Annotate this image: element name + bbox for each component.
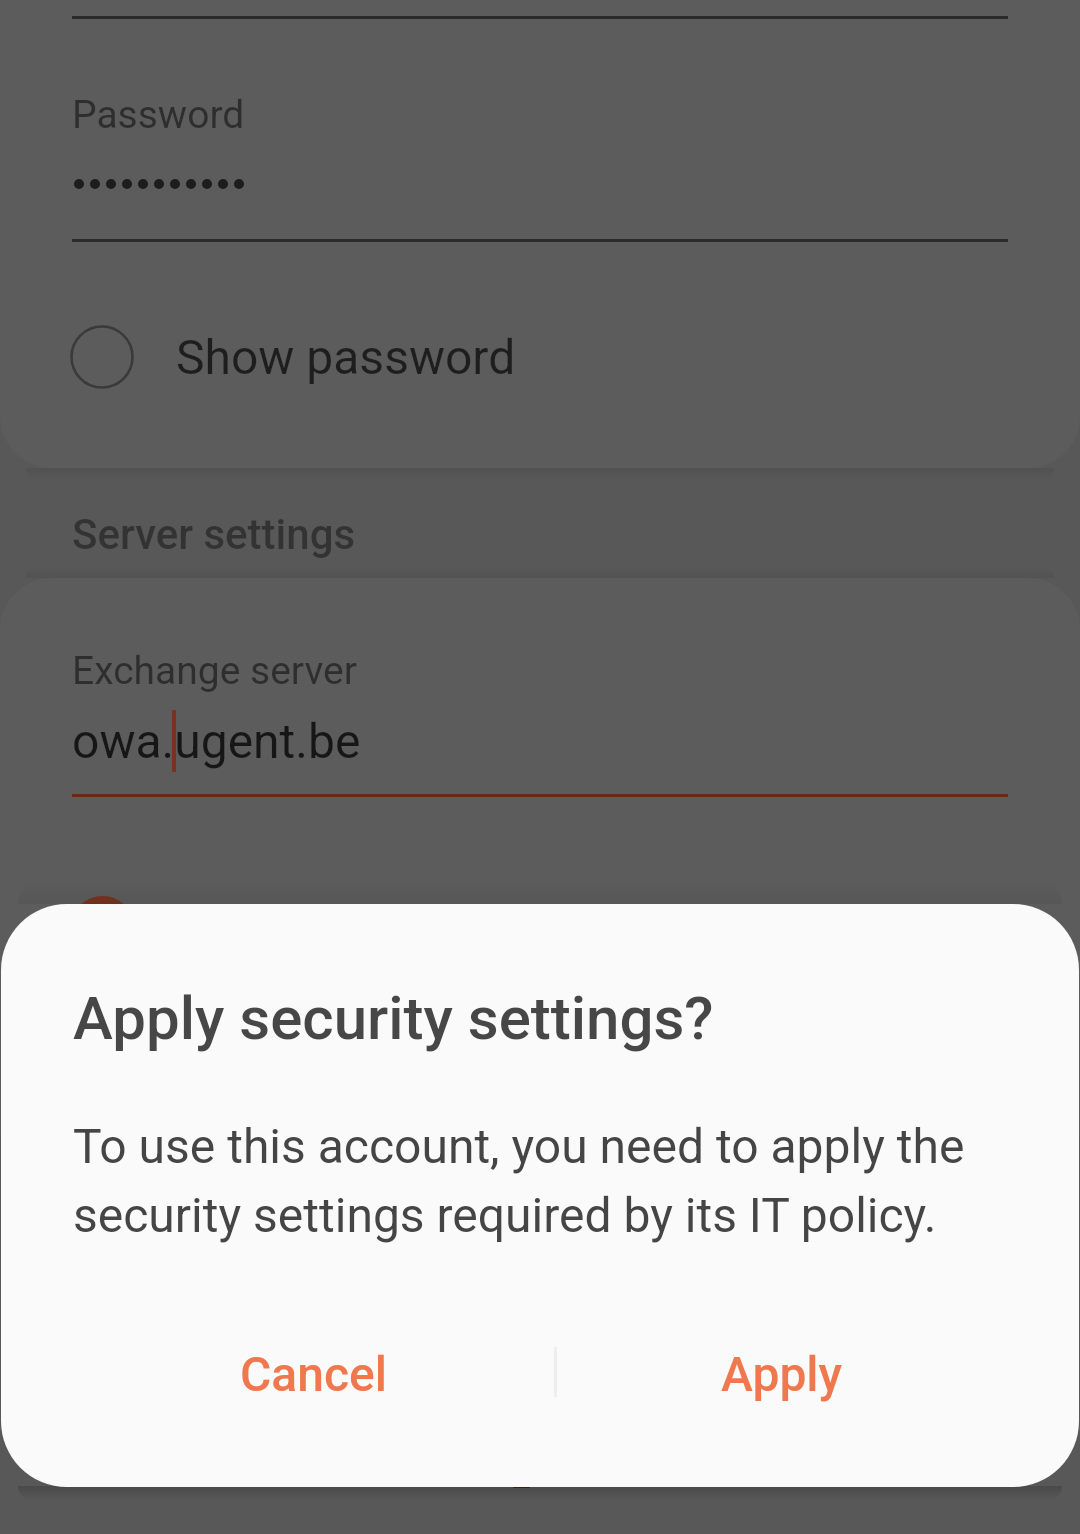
staticText: Apply (721, 1346, 843, 1402)
staticText: Cancel (240, 1346, 387, 1402)
staticText: owa.ugent.be (72, 713, 361, 769)
staticText: Apply security settings? (73, 983, 714, 1053)
staticText: To use this account, you need to apply t… (73, 1118, 993, 1243)
staticText: Show password (176, 329, 516, 385)
button[interactable]: Password (0, 60, 1080, 242)
button[interactable]: Cancel (73, 1314, 554, 1434)
button[interactable]: Apply (557, 1314, 1007, 1434)
button[interactable]: Exchange server (0, 578, 1080, 828)
other: Show password (70, 325, 134, 389)
button[interactable]: Show password (0, 311, 1080, 403)
staticText: Server settings (72, 510, 356, 559)
staticText: Password (72, 92, 245, 138)
staticText: Exchange server (72, 648, 357, 694)
